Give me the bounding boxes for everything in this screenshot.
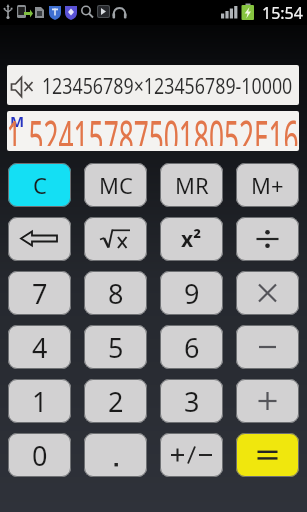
button[interactable]: 8: [84, 271, 147, 315]
staticText: M+: [251, 170, 284, 200]
button[interactable]: 3: [160, 379, 223, 423]
button[interactable]: [236, 271, 299, 315]
button[interactable]: [84, 217, 147, 261]
button[interactable]: 5: [84, 325, 147, 369]
button[interactable]: [236, 325, 299, 369]
staticText: 4: [32, 329, 48, 366]
staticText: 0: [32, 437, 48, 474]
button[interactable]: 2: [84, 379, 147, 423]
button[interactable]: [236, 217, 299, 261]
button[interactable]: 0: [8, 433, 71, 477]
staticText: C: [33, 170, 47, 200]
staticText: 9: [184, 275, 200, 312]
staticText: 8: [108, 275, 124, 312]
button[interactable]: MC: [84, 163, 147, 207]
button[interactable]: [8, 217, 71, 261]
staticText: 1.524157875018052E16: [6, 106, 299, 146]
staticText: 123456789×123456789-10000: [42, 70, 293, 100]
staticText: 3: [184, 383, 200, 420]
button[interactable]: 4: [8, 325, 71, 369]
button[interactable]: 7: [8, 271, 71, 315]
staticText: 6: [184, 329, 200, 366]
staticText: 15:54: [262, 2, 303, 24]
button[interactable]: [236, 379, 299, 423]
staticText: 2: [108, 383, 124, 420]
staticText: MR: [175, 170, 209, 200]
button[interactable]: MR: [160, 163, 223, 207]
button[interactable]: C: [8, 163, 71, 207]
button[interactable]: [236, 433, 299, 477]
staticText: 1: [32, 383, 48, 420]
staticText: MC: [99, 170, 133, 200]
button[interactable]: M+: [236, 163, 299, 207]
button[interactable]: [84, 433, 147, 477]
staticText: x²: [181, 225, 202, 254]
button[interactable]: 6: [160, 325, 223, 369]
button[interactable]: x²: [160, 217, 223, 261]
staticText: M: [10, 111, 25, 131]
button[interactable]: 9: [160, 271, 223, 315]
staticText: 5: [108, 329, 124, 366]
button[interactable]: 1: [8, 379, 71, 423]
button[interactable]: [160, 433, 223, 477]
staticText: 7: [32, 275, 48, 312]
